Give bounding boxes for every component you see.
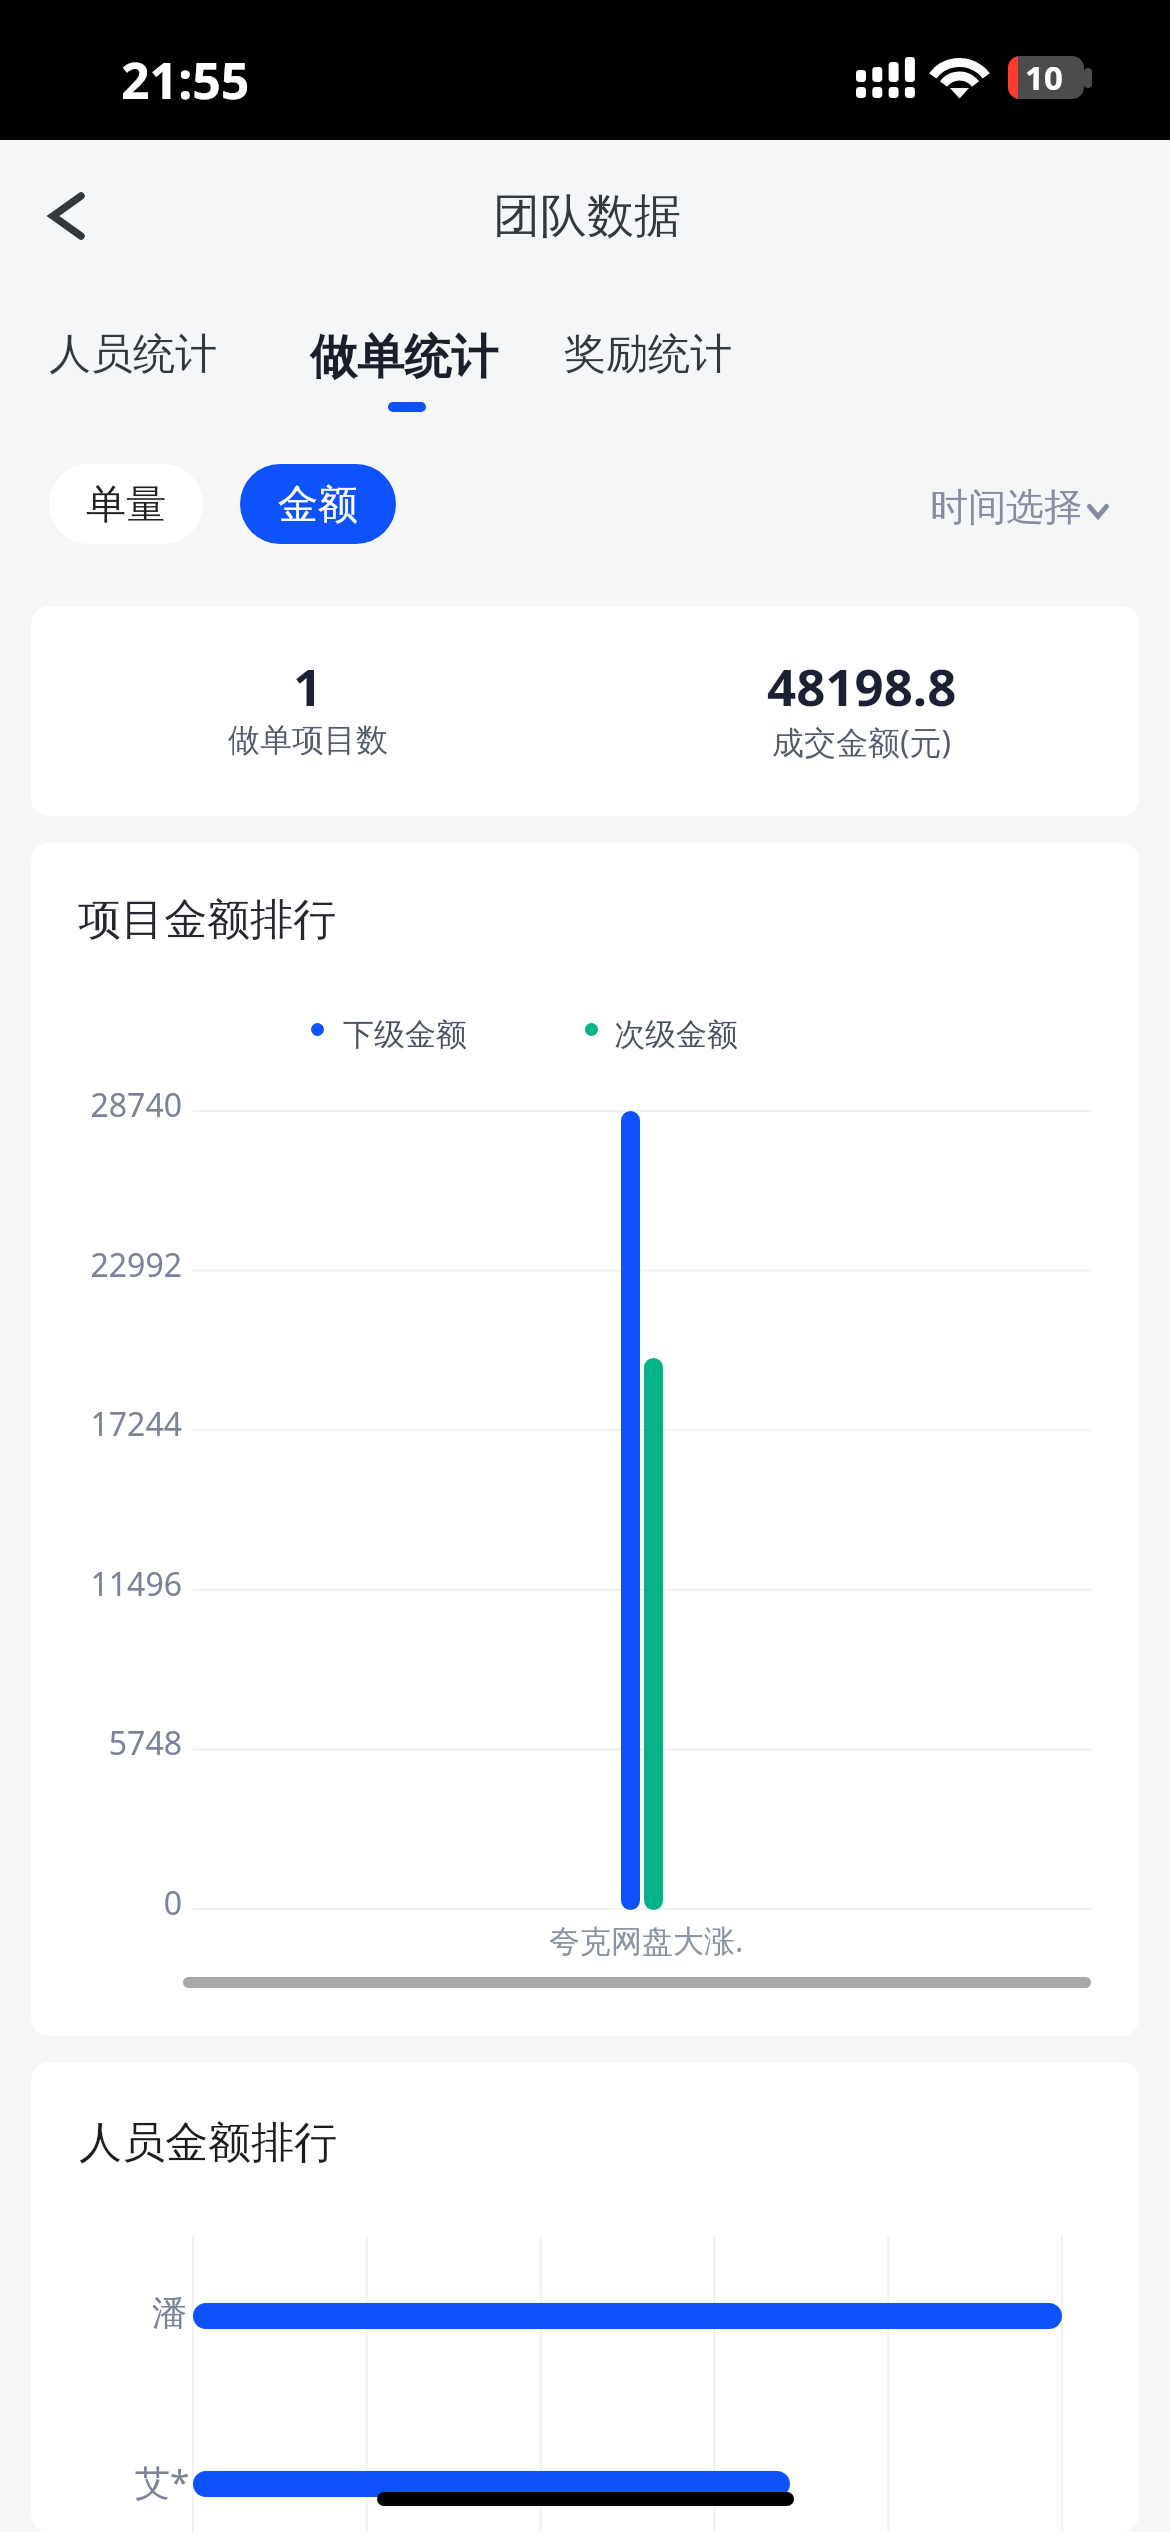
staticText: 0 [34, 1881, 182, 1925]
staticText: 夸克网盘大涨. [549, 1919, 744, 1961]
button[interactable]: 时间选择 [912, 467, 1127, 539]
staticText: 次级金额 [614, 1015, 738, 1054]
staticText: 5748 [34, 1721, 182, 1765]
staticText: 团队数据 [493, 187, 681, 246]
button[interactable]: 单量 [49, 464, 203, 544]
staticText: 金额 [278, 479, 358, 529]
staticText: 10 [1025, 55, 1063, 98]
staticText: 28740 [34, 1083, 182, 1127]
staticText: 项目金额排行 [78, 893, 336, 947]
staticText: 潘 [152, 2291, 187, 2335]
staticText: 人员金额排行 [79, 2116, 337, 2170]
button[interactable]: 奖励统计 [564, 328, 732, 408]
staticText: 艾* [135, 2458, 190, 2506]
staticText: 11496 [34, 1562, 182, 1606]
staticText: 做单统计 [310, 328, 498, 387]
staticText: 48198.8 [767, 651, 957, 720]
staticText: 时间选择 [930, 483, 1082, 531]
staticText: 1 [293, 651, 323, 720]
button[interactable]: 做单统计 [310, 328, 498, 412]
staticText: 21:55 [121, 46, 250, 114]
staticText: 单量 [86, 479, 166, 529]
staticText: 做单项目数 [228, 720, 388, 760]
staticText: 人员统计 [49, 328, 217, 381]
staticText: 22992 [34, 1243, 182, 1287]
staticText: 成交金额(元) [772, 720, 952, 764]
button[interactable]: Back [28, 177, 106, 255]
button[interactable]: 人员统计 [49, 328, 217, 408]
button[interactable]: 金额 [240, 464, 396, 544]
staticText: 下级金额 [343, 1015, 467, 1054]
staticText: 17244 [34, 1402, 182, 1446]
staticText: 奖励统计 [564, 328, 732, 381]
